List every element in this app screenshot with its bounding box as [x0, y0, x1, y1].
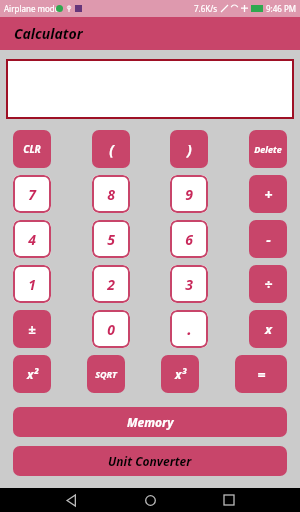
- staticText: 7.6K/s: [194, 3, 218, 14]
- staticText: ±: [28, 320, 36, 338]
- button[interactable]: [6, 59, 294, 119]
- button[interactable]: Unit Converter: [13, 446, 287, 476]
- button[interactable]: SQRT: [87, 355, 125, 393]
- button[interactable]: 6: [170, 220, 208, 258]
- staticText: 3: [185, 275, 193, 294]
- staticText: .: [187, 318, 192, 340]
- button[interactable]: (: [92, 130, 130, 168]
- staticText: 9: [185, 185, 193, 204]
- button[interactable]: .: [170, 310, 208, 348]
- button[interactable]: 4: [13, 220, 51, 258]
- button[interactable]: 3: [170, 265, 208, 303]
- button[interactable]: x³: [161, 355, 199, 393]
- staticText: ): [187, 140, 192, 159]
- staticText: 2: [107, 275, 115, 294]
- staticText: (: [109, 140, 114, 159]
- button[interactable]: 1: [13, 265, 51, 303]
- staticText: Delete: [254, 143, 282, 155]
- staticText: x: [265, 320, 272, 338]
- button[interactable]: Delete: [249, 130, 287, 168]
- staticText: CLR: [23, 142, 41, 156]
- staticText: 5: [107, 230, 115, 249]
- button[interactable]: Memory: [13, 407, 287, 437]
- staticText: x²: [27, 366, 38, 382]
- staticText: 8: [107, 185, 115, 204]
- staticText: Memory: [127, 414, 174, 430]
- button[interactable]: -: [249, 220, 287, 258]
- button[interactable]: 0: [92, 310, 130, 348]
- staticText: +: [264, 185, 273, 204]
- button[interactable]: 5: [92, 220, 130, 258]
- button[interactable]: ): [170, 130, 208, 168]
- staticText: Unit Converter: [108, 453, 192, 469]
- button[interactable]: 7: [13, 175, 51, 213]
- staticText: 9:46 PM: [266, 3, 297, 14]
- button[interactable]: 9: [170, 175, 208, 213]
- staticText: Airplane mode: [4, 3, 60, 14]
- button[interactable]: Back: [60, 489, 82, 511]
- staticText: Calculator: [14, 24, 83, 43]
- staticText: 4: [28, 230, 36, 249]
- button[interactable]: Recents: [218, 489, 240, 511]
- staticText: -: [266, 230, 271, 249]
- staticText: ÷: [264, 275, 273, 294]
- staticText: 7: [28, 185, 36, 204]
- staticText: 1: [28, 275, 36, 294]
- button[interactable]: =: [235, 355, 287, 393]
- button[interactable]: ÷: [249, 265, 287, 303]
- button[interactable]: x²: [13, 355, 51, 393]
- button[interactable]: x: [249, 310, 287, 348]
- staticText: x³: [175, 366, 186, 382]
- button[interactable]: Home: [139, 489, 161, 511]
- staticText: SQRT: [95, 368, 117, 380]
- button[interactable]: ±: [13, 310, 51, 348]
- staticText: 6: [185, 230, 193, 249]
- button[interactable]: +: [249, 175, 287, 213]
- staticText: 0: [107, 320, 115, 339]
- button[interactable]: CLR: [13, 130, 51, 168]
- button[interactable]: 2: [92, 265, 130, 303]
- staticText: =: [257, 365, 266, 384]
- button[interactable]: 8: [92, 175, 130, 213]
